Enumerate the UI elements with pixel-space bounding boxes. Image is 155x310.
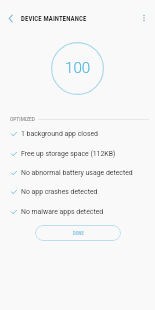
button[interactable]: No app crashes detected: [0, 182, 155, 201]
button[interactable]: 1 background app closed: [0, 124, 155, 143]
button[interactable]: Navigate up: [0, 0, 21, 36]
staticText: DONE: [73, 231, 84, 236]
staticText: Free up storage space (112KB): [21, 150, 116, 158]
staticText: No malware apps detected: [21, 208, 104, 216]
button[interactable]: More options: [133, 0, 155, 36]
staticText: 100: [65, 59, 91, 77]
staticText: No app crashes detected: [21, 188, 98, 196]
staticText: DEVICE MAINTENANCE: [21, 15, 87, 23]
button[interactable]: DONE: [35, 225, 121, 241]
button[interactable]: Free up storage space (112KB): [0, 144, 155, 163]
button[interactable]: No abnormal battery usage detected: [0, 163, 155, 182]
staticText: 1 background app closed: [21, 130, 99, 138]
button[interactable]: No malware apps detected: [0, 202, 155, 221]
staticText: OPTIMIZED: [10, 117, 35, 123]
staticText: No abnormal battery usage detected: [21, 169, 133, 177]
